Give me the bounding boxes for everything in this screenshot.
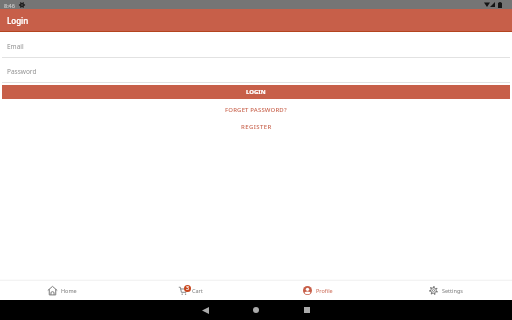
button[interactable]: Home: [245, 300, 267, 320]
staticText: LOGIN: [246, 88, 266, 96]
button[interactable]: Home: [0, 281, 128, 300]
staticText: 3: [186, 285, 189, 292]
button[interactable]: Email: [0, 36, 512, 58]
button[interactable]: LOGIN: [2, 85, 510, 99]
button[interactable]: Password: [0, 61, 512, 83]
staticText: Email: [7, 42, 24, 51]
staticText: Login: [7, 15, 29, 26]
staticText: FORGET PASSWORD?: [225, 106, 287, 114]
staticText: Settings: [442, 287, 463, 294]
button[interactable]: Profile: [256, 281, 384, 300]
button[interactable]: 3: [128, 281, 256, 300]
button[interactable]: FORGET PASSWORD?: [0, 103, 512, 116]
staticText: 8:46: [4, 2, 15, 9]
staticText: Home: [61, 287, 77, 294]
staticText: REGISTER: [241, 123, 272, 131]
staticText: Password: [7, 67, 37, 76]
button[interactable]: Back: [194, 300, 216, 320]
staticText: Profile: [316, 287, 333, 294]
staticText: Cart: [192, 287, 203, 294]
button[interactable]: Settings: [384, 281, 512, 300]
button[interactable]: REGISTER: [0, 120, 512, 133]
button[interactable]: Recents: [296, 300, 318, 320]
